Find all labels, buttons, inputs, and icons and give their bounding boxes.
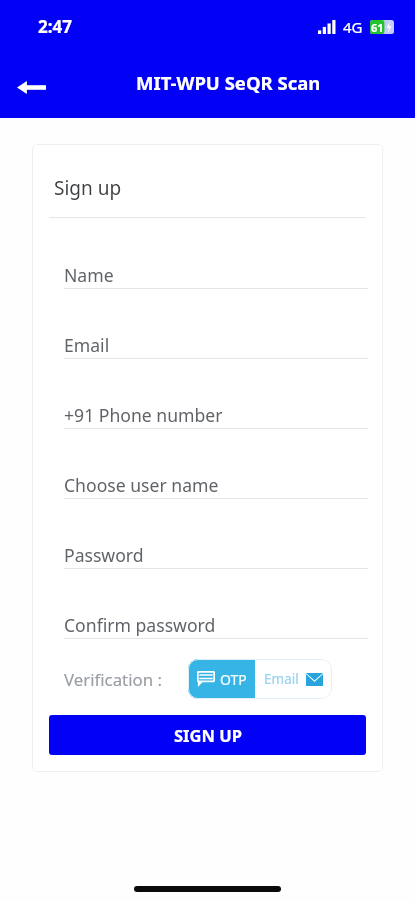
staticText: MIT-WPU SeQR Scan [136,70,321,95]
staticText: OTP [220,670,247,689]
button[interactable]: SIGN UP [49,715,366,755]
staticText: Password [64,543,144,567]
button[interactable]: Email [255,659,332,699]
staticText: Email [264,670,299,688]
staticText: Choose user name [64,473,219,497]
staticText: Verification : [64,668,162,691]
staticText: Name [64,263,114,287]
button[interactable]: Back [8,64,54,110]
staticText: Confirm password [64,613,216,637]
staticText: Sign up [54,175,122,201]
staticText: 61 [371,20,384,34]
staticText: Email [64,333,110,357]
staticText: +91 Phone number [64,403,223,427]
staticText: SIGN UP [174,724,242,746]
button[interactable]: OTP [188,659,255,699]
staticText: 4G [343,17,363,37]
staticText: 2:47 [38,15,72,38]
